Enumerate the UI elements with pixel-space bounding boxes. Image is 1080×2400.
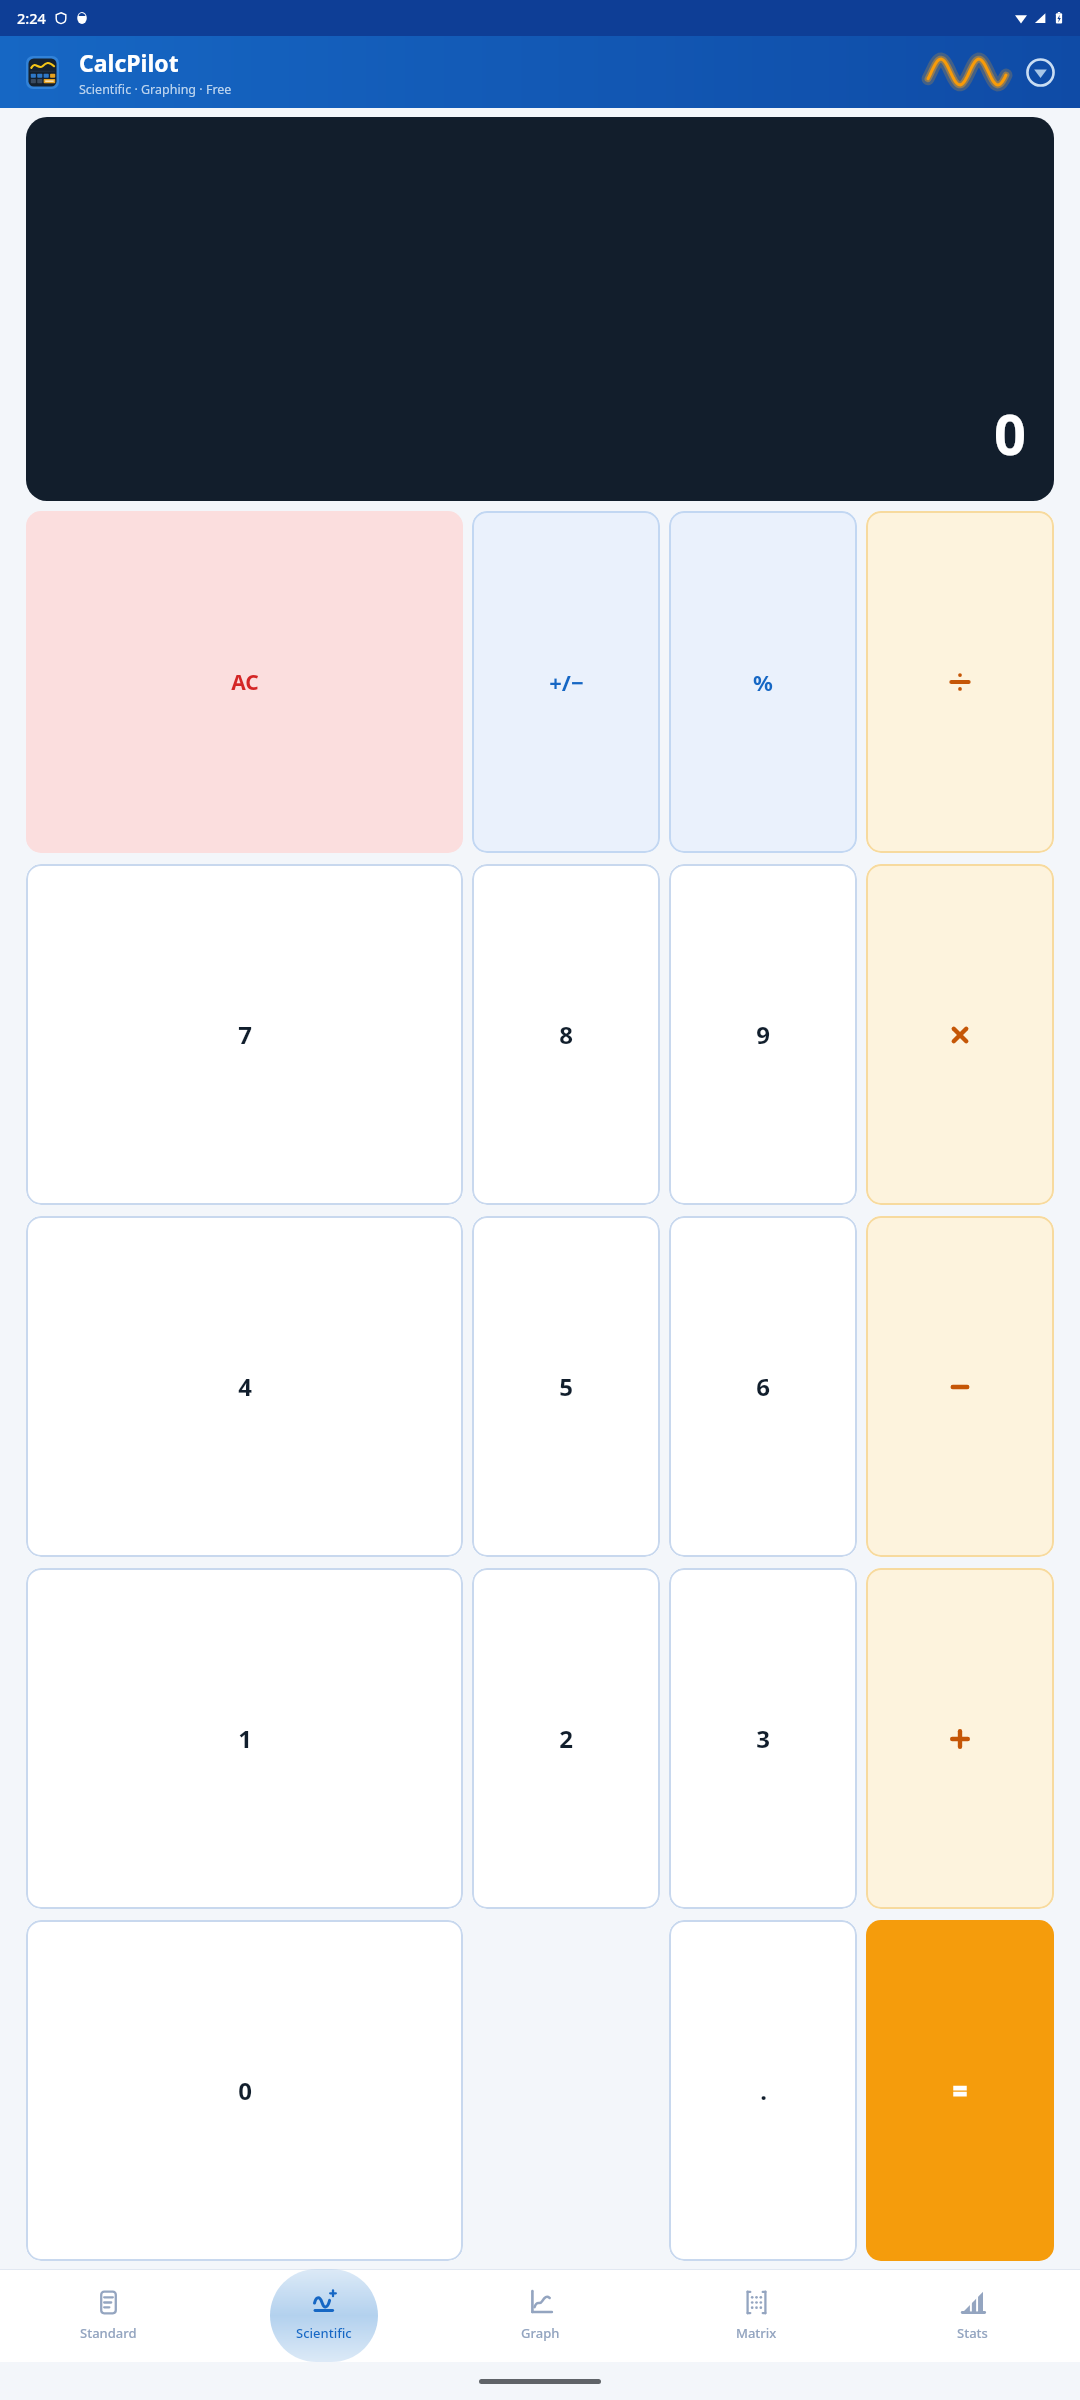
staticText: Graph (521, 2324, 560, 2342)
staticText: 5 (559, 1370, 573, 1403)
staticText: . (760, 2074, 767, 2107)
staticText: 0 (238, 2074, 252, 2107)
button[interactable]: Expand options (1026, 58, 1055, 87)
button[interactable] (866, 1920, 1054, 2261)
button[interactable]: +/− (472, 511, 660, 853)
button[interactable] (866, 1216, 1054, 1557)
button[interactable]: 9 (669, 864, 857, 1205)
button[interactable]: . (669, 1920, 857, 2261)
staticText: 4 (238, 1370, 252, 1403)
staticText: +/− (549, 667, 584, 697)
staticText: 3 (756, 1722, 770, 1755)
staticText: 9 (756, 1018, 770, 1051)
staticText: Matrix (736, 2324, 777, 2342)
button[interactable]: Graph (432, 2269, 648, 2362)
button[interactable] (866, 511, 1054, 853)
button[interactable]: 4 (26, 1216, 463, 1557)
staticText: 2 (559, 1722, 573, 1755)
button[interactable]: 3 (669, 1568, 857, 1909)
button[interactable] (866, 1568, 1054, 1909)
staticText: 7 (238, 1018, 252, 1051)
button[interactable]: AC (26, 511, 463, 853)
staticText: 0 (994, 395, 1027, 471)
button[interactable]: Waveform graph (928, 53, 1006, 91)
staticText: 1 (238, 1722, 252, 1755)
button[interactable]: Matrix (648, 2269, 864, 2362)
button[interactable]: 2 (472, 1568, 660, 1909)
staticText: Standard (80, 2324, 137, 2342)
button[interactable]: 0 (26, 1920, 463, 2261)
staticText: AC (231, 668, 259, 697)
staticText: Scientific · Graphing · Free (79, 81, 232, 98)
button[interactable] (866, 864, 1054, 1205)
staticText: 2:24 (17, 8, 46, 28)
staticText: Scientific (296, 2324, 352, 2342)
staticText: CalcPilot (79, 47, 179, 78)
staticText: Stats (957, 2324, 988, 2342)
button[interactable]: 7 (26, 864, 463, 1205)
button[interactable]: 6 (669, 1216, 857, 1557)
staticText: 6 (756, 1370, 770, 1403)
button[interactable]: 8 (472, 864, 660, 1205)
staticText: % (753, 667, 773, 697)
button[interactable]: Stats (864, 2269, 1080, 2362)
button[interactable]: 5 (472, 1216, 660, 1557)
button[interactable]: % (669, 511, 857, 853)
button[interactable]: 1 (26, 1568, 463, 1909)
staticText: 8 (559, 1018, 573, 1051)
button[interactable]: Standard (0, 2269, 216, 2362)
button[interactable]: Scientific (216, 2269, 432, 2362)
